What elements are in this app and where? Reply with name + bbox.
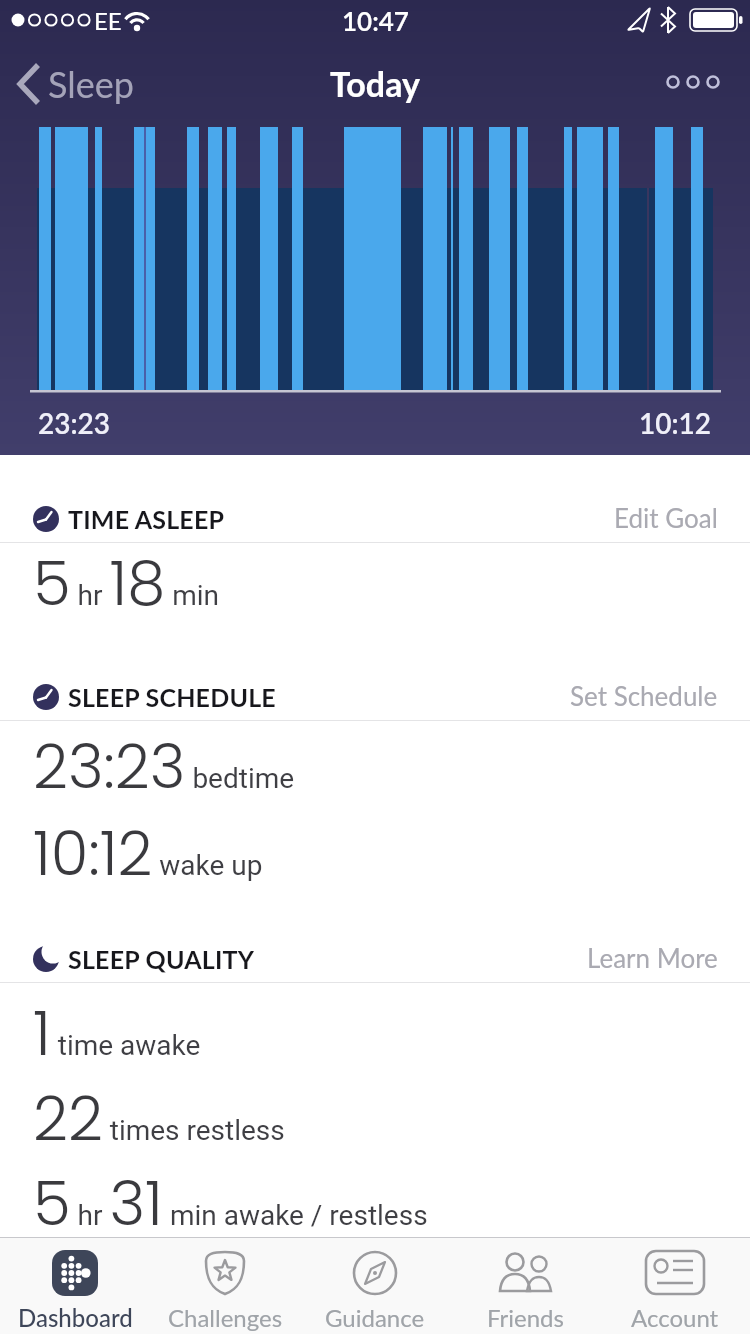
button[interactable]: Dashboard bbox=[0, 1237, 150, 1334]
staticText: 10:47 bbox=[342, 5, 409, 36]
staticText: 5 hr 18 min bbox=[33, 541, 220, 626]
button[interactable]: Friends bbox=[450, 1237, 600, 1334]
button[interactable]: Sleep bbox=[14, 60, 100, 103]
staticText: SLEEP SCHEDULE bbox=[68, 682, 276, 712]
button[interactable]: Learn More bbox=[587, 942, 718, 973]
staticText: 1 time awake bbox=[33, 991, 201, 1076]
staticText: Challenges bbox=[168, 1303, 283, 1332]
staticText: Today bbox=[330, 63, 420, 104]
staticText: TIME ASLEEP bbox=[68, 504, 225, 534]
staticText: 10:12 wake up bbox=[33, 811, 263, 896]
staticText: 22 times restless bbox=[33, 1076, 285, 1161]
button[interactable] bbox=[655, 66, 731, 98]
staticText: Friends bbox=[487, 1303, 564, 1332]
staticText: 5 hr 31 min awake / restless bbox=[33, 1161, 428, 1246]
staticText: 10:12 bbox=[639, 406, 712, 440]
staticText: Guidance bbox=[325, 1303, 425, 1332]
staticText: 23:23 bedtime bbox=[33, 724, 295, 809]
staticText: SLEEP QUALITY bbox=[68, 944, 255, 974]
button[interactable]: Account bbox=[600, 1237, 750, 1334]
staticText: Sleep bbox=[48, 62, 134, 105]
button[interactable]: Guidance bbox=[300, 1237, 450, 1334]
button[interactable]: Challenges bbox=[150, 1237, 300, 1334]
staticText: Dashboard bbox=[18, 1303, 133, 1332]
button[interactable]: Set Schedule bbox=[570, 680, 718, 711]
staticText: Account bbox=[631, 1303, 719, 1332]
button[interactable]: Edit Goal bbox=[614, 502, 718, 533]
staticText: 23:23 bbox=[38, 406, 111, 440]
staticText: EE bbox=[94, 6, 122, 35]
